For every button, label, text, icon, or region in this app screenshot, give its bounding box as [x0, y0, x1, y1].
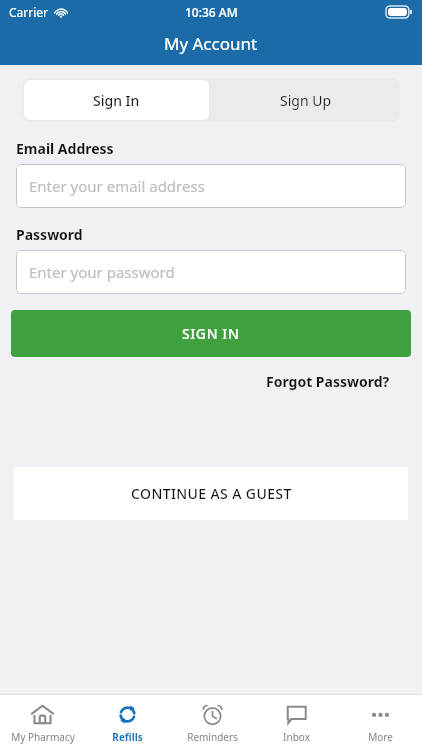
button[interactable]: Inbox	[254, 695, 338, 744]
button[interactable]: CONTINUE AS A GUEST	[14, 467, 408, 520]
staticText: My Pharmacy	[11, 730, 75, 744]
staticText: Reminders	[187, 730, 238, 744]
button[interactable]: Enter your password	[16, 250, 406, 294]
button[interactable]: Sign Up	[211, 78, 400, 122]
button[interactable]: Sign In	[24, 80, 209, 120]
staticText: Sign In	[93, 91, 140, 110]
staticText: Forgot Password?	[266, 372, 390, 391]
button[interactable]: More	[338, 695, 422, 744]
staticText: More	[368, 730, 393, 744]
staticText: Sign Up	[280, 91, 332, 110]
button[interactable]: SIGN IN	[11, 310, 411, 357]
staticText: Refills	[112, 730, 143, 744]
staticText: SIGN IN	[182, 324, 240, 343]
button[interactable]: Enter your email address	[16, 164, 406, 208]
staticText: 10:36 AM	[185, 4, 238, 20]
button[interactable]: My Pharmacy	[0, 695, 85, 744]
staticText: Password	[16, 225, 83, 244]
staticText: Enter your password	[29, 262, 175, 282]
staticText: Inbox	[283, 730, 310, 744]
button[interactable]: Forgot Password?	[266, 370, 422, 393]
staticText: Enter your email address	[29, 176, 205, 196]
button[interactable]: Reminders	[170, 695, 254, 744]
staticText: CONTINUE AS A GUEST	[131, 484, 292, 503]
staticText: Carrier	[9, 4, 49, 20]
button[interactable]: Refills	[85, 695, 170, 744]
staticText: My Account	[164, 32, 258, 55]
staticText: Email Address	[16, 139, 114, 158]
